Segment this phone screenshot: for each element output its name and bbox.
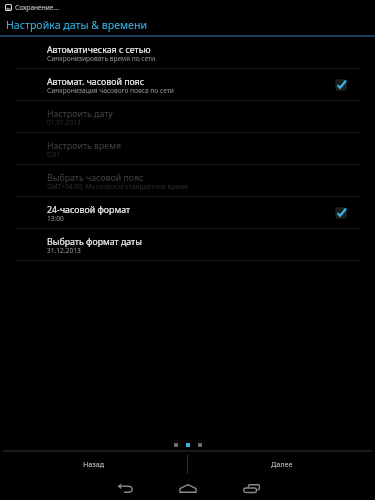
button[interactable]: 24-часовой формат bbox=[0, 197, 375, 229]
button[interactable]: Автомат. часовой пояс bbox=[0, 69, 375, 101]
button[interactable]: Выбрать часовой пояс bbox=[0, 165, 375, 197]
button[interactable]: Автоматическая с сетью bbox=[0, 37, 375, 69]
staticText: Синхронизировать время по сети bbox=[47, 54, 156, 63]
staticText: 01.01.2013 bbox=[47, 118, 81, 127]
button[interactable]: Home bbox=[168, 476, 208, 500]
staticText: Далее bbox=[271, 459, 293, 469]
staticText: 31.12.2013 bbox=[47, 246, 81, 255]
staticText: 24-часовой формат bbox=[47, 204, 131, 216]
button[interactable]: Recent apps bbox=[231, 476, 271, 500]
button[interactable]: Настроить дату bbox=[0, 101, 375, 133]
staticText: Настроить дату bbox=[47, 108, 113, 120]
button[interactable]: Back bbox=[105, 476, 145, 500]
staticText: 13:00 bbox=[47, 214, 64, 223]
staticText: GMT+04:00, Московское стандартное время bbox=[47, 182, 188, 191]
staticText: Выбрать формат даты bbox=[47, 236, 142, 248]
button[interactable]: Выбрать формат даты bbox=[0, 229, 375, 261]
staticText: Назад bbox=[83, 459, 105, 469]
staticText: Настройка даты & времени bbox=[6, 18, 148, 32]
button[interactable]: Настроить время bbox=[0, 133, 375, 165]
staticText: Выбрать часовой пояс bbox=[47, 172, 144, 184]
button[interactable]: Назад bbox=[0, 452, 187, 476]
staticText: Автомат. часовой пояс bbox=[47, 76, 145, 88]
staticText: Автоматическая с сетью bbox=[47, 44, 151, 56]
button[interactable]: Далее bbox=[188, 452, 375, 476]
staticText: Сохранение... bbox=[15, 3, 59, 12]
staticText: Синхронизация часового пояса по сети bbox=[47, 86, 174, 95]
staticText: Настроить время bbox=[47, 140, 122, 152]
staticText: 0:01 bbox=[47, 150, 61, 159]
